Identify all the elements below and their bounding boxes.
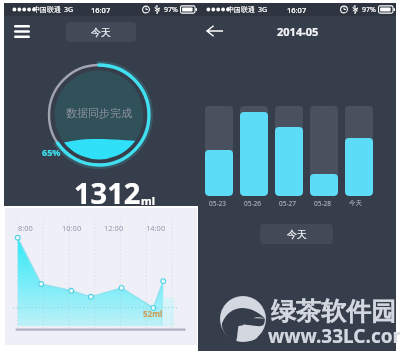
staticText: 05-27 (279, 199, 296, 208)
staticText: 14:00 (146, 223, 166, 233)
button[interactable]: 今天 (260, 224, 333, 244)
staticText: 10:00 (62, 223, 82, 233)
button[interactable]: Back (201, 20, 227, 41)
button[interactable] (310, 106, 338, 196)
staticText: 97% (362, 5, 376, 15)
staticText: 数据同步完成 (66, 106, 132, 120)
button[interactable] (240, 106, 268, 196)
staticText: 16:07 (287, 5, 307, 15)
staticText: 05-23 (209, 199, 226, 208)
staticText: 05-26 (244, 199, 261, 208)
button[interactable] (275, 106, 303, 196)
staticText: 绿茶软件园 (271, 296, 396, 327)
staticText: 中国联通 (33, 5, 61, 14)
staticText: 3G (64, 5, 74, 15)
staticText: 8:00 (18, 223, 33, 233)
staticText: 52ml (143, 308, 163, 319)
staticText: 今天 (91, 26, 111, 39)
staticText: 2014-05 (277, 24, 319, 39)
staticText: 今天 (349, 199, 362, 207)
staticText: ml (141, 193, 156, 208)
staticText: 中国联通 (227, 5, 255, 14)
staticText: 3G (258, 5, 268, 15)
button[interactable] (345, 106, 373, 196)
staticText: 05-28 (314, 199, 331, 208)
staticText: 今天 (287, 228, 307, 241)
staticText: 1312 (74, 173, 141, 212)
button[interactable]: 今天 (66, 22, 136, 42)
staticText: 16:07 (91, 5, 111, 15)
button[interactable]: Menu (10, 21, 34, 41)
staticText: 65% (42, 146, 61, 158)
staticText: www.33LC.com (268, 323, 400, 349)
staticText: 12:00 (104, 223, 124, 233)
button[interactable] (205, 106, 233, 196)
staticText: 97% (164, 5, 178, 15)
